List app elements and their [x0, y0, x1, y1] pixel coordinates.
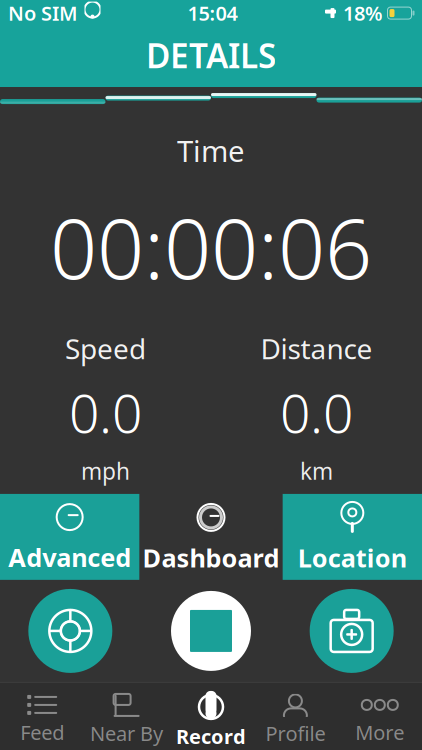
button[interactable]: Advanced	[0, 494, 139, 580]
button[interactable]: Emergency	[310, 589, 394, 673]
staticText: Distance	[260, 330, 372, 367]
staticText: Near By	[90, 720, 163, 746]
button[interactable]: Stop	[171, 591, 251, 671]
staticText: No SIM	[8, 0, 78, 26]
staticText: 00:00:06	[50, 192, 372, 302]
staticText: Location	[298, 541, 407, 574]
button[interactable]: Near By	[84, 683, 169, 750]
staticText: Feed	[20, 719, 64, 745]
staticText: Dashboard	[142, 541, 279, 574]
button[interactable]: Location	[283, 494, 422, 580]
staticText: km	[300, 456, 333, 486]
button[interactable]: Record	[169, 683, 253, 750]
button[interactable]: Feed	[0, 683, 84, 750]
staticText: Time	[177, 131, 245, 170]
staticText: 0.0	[280, 377, 353, 448]
button[interactable]: Support	[28, 589, 112, 673]
button[interactable]: Dashboard	[141, 494, 281, 580]
staticText: DETAILS	[146, 33, 276, 77]
staticText: More	[355, 719, 404, 745]
staticText: 18%	[343, 0, 383, 26]
button[interactable]: More	[338, 683, 422, 750]
button[interactable]: Profile	[253, 683, 338, 750]
staticText: Advanced	[8, 540, 131, 574]
staticText: Profile	[265, 720, 325, 746]
staticText: Speed	[65, 330, 146, 367]
staticText: Record	[176, 723, 246, 749]
staticText: 15:04	[187, 0, 237, 26]
staticText: 0.0	[69, 377, 142, 448]
staticText: mph	[81, 456, 130, 486]
